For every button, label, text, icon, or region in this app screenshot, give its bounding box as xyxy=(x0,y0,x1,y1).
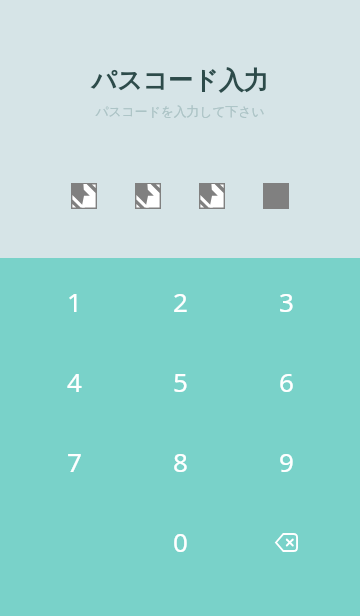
staticText: 7 xyxy=(67,444,82,479)
button[interactable]: 5 xyxy=(127,341,233,421)
staticText: パスコードを入力して下さい xyxy=(95,104,265,120)
button[interactable]: 9 xyxy=(233,421,339,501)
staticText: 8 xyxy=(173,444,188,479)
staticText: 3 xyxy=(279,284,294,319)
staticText: 2 xyxy=(173,284,188,319)
button[interactable]: 1 xyxy=(21,261,127,341)
staticText: 9 xyxy=(279,444,294,479)
staticText: 6 xyxy=(279,364,294,399)
button[interactable]: 8 xyxy=(127,421,233,501)
button[interactable]: 2 xyxy=(127,261,233,341)
button[interactable]: 0 xyxy=(127,501,233,581)
staticText: 5 xyxy=(173,364,188,399)
staticText: 1 xyxy=(67,284,82,319)
staticText: 4 xyxy=(67,364,82,399)
button[interactable]: Delete xyxy=(233,501,339,581)
button[interactable]: 6 xyxy=(233,341,339,421)
button[interactable]: 3 xyxy=(233,261,339,341)
button[interactable]: 7 xyxy=(21,421,127,501)
staticText: 0 xyxy=(173,524,188,559)
staticText: パスコード入力 xyxy=(91,65,269,96)
button[interactable]: 4 xyxy=(21,341,127,421)
